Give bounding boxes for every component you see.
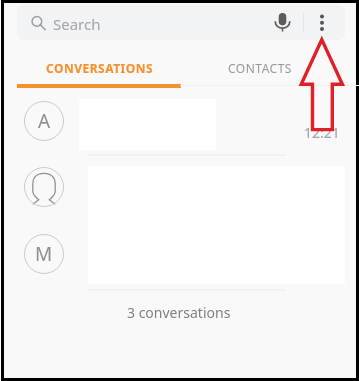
button[interactable]: A xyxy=(24,101,64,141)
staticText: 3 conversations xyxy=(127,303,231,320)
staticText: CONTACTS xyxy=(228,60,292,76)
button[interactable]: CONTACTS xyxy=(195,55,325,81)
staticText: CONVERSATIONS xyxy=(46,60,154,76)
button[interactable]: CONVERSATIONS xyxy=(30,55,170,81)
button[interactable]: Voice search xyxy=(266,5,299,40)
button[interactable]: Search xyxy=(17,5,303,40)
staticText: M xyxy=(35,241,53,267)
staticText: 12:21 xyxy=(304,123,340,141)
button[interactable]: More options xyxy=(305,5,345,40)
staticText: A xyxy=(38,108,51,134)
staticText: Search xyxy=(53,14,101,34)
button[interactable]: M xyxy=(24,234,64,274)
button[interactable] xyxy=(24,167,64,207)
